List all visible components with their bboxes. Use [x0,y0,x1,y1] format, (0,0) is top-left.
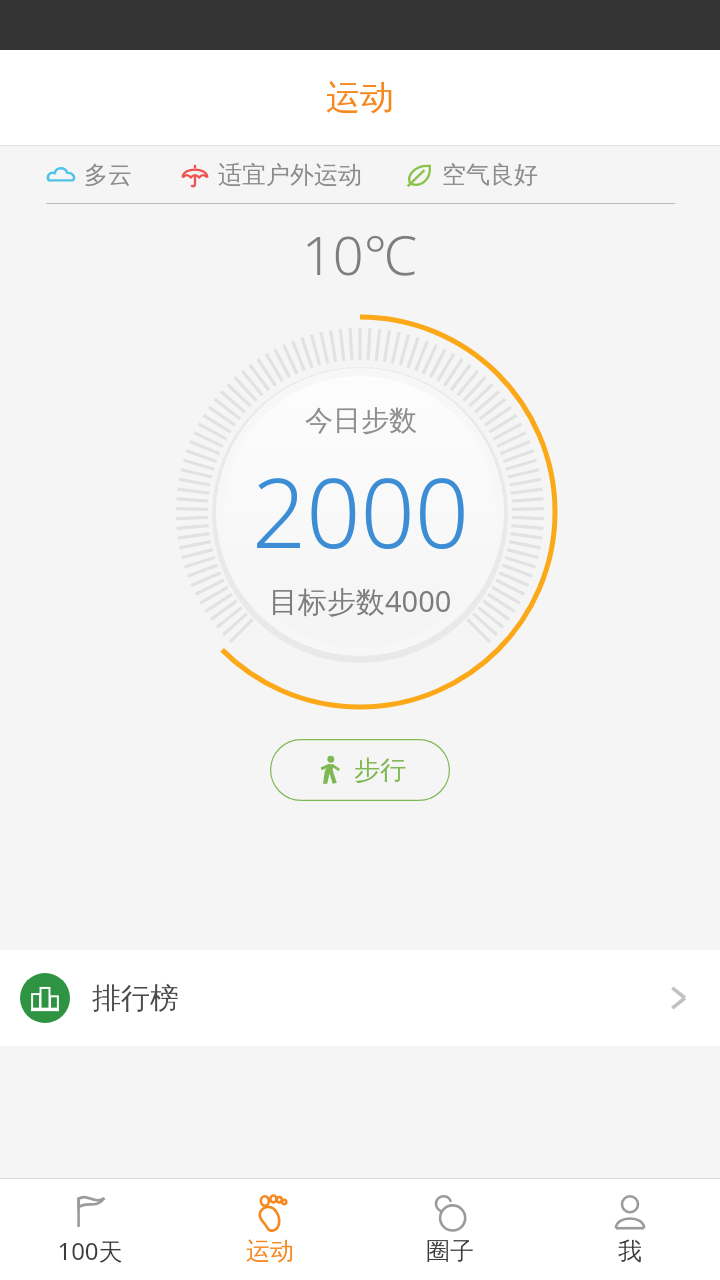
staticText: 圈子 [426,1236,474,1266]
button[interactable]: 运动 [180,1179,360,1280]
staticText: 今日步数 [305,403,417,438]
staticText: 运动 [326,76,394,119]
button[interactable]: 圈子 [360,1179,540,1280]
staticText: 目标步数4000 [269,581,452,621]
staticText: 步行 [354,754,406,787]
staticText: 运动 [246,1236,294,1266]
staticText: 10℃ [302,217,418,291]
button[interactable]: 我 [540,1179,720,1280]
staticText: 我 [618,1236,642,1266]
other: 打开排行榜 [660,978,700,1018]
staticText: 空气良好 [442,160,538,190]
staticText: 适宜户外运动 [218,160,362,190]
button[interactable]: 排行榜 [0,950,720,1046]
staticText: 2000 [252,446,469,575]
button[interactable]: 步行 [270,739,450,801]
staticText: 多云 [84,160,132,190]
staticText: 100天 [57,1234,123,1267]
button[interactable]: 100天 [0,1179,180,1280]
staticText: 排行榜 [92,980,179,1017]
